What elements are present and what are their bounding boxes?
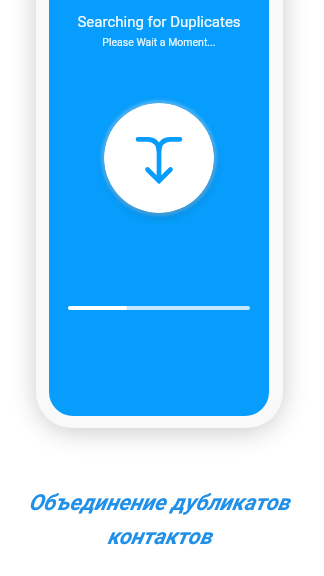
- staticText: Searching for Duplicates: [77, 13, 241, 31]
- staticText: контактов: [107, 524, 212, 550]
- staticText: Please Wait a Moment...: [102, 36, 216, 48]
- staticText: Объединение дубликатов: [28, 490, 290, 516]
- button[interactable]: Merge duplicates: [104, 103, 214, 213]
